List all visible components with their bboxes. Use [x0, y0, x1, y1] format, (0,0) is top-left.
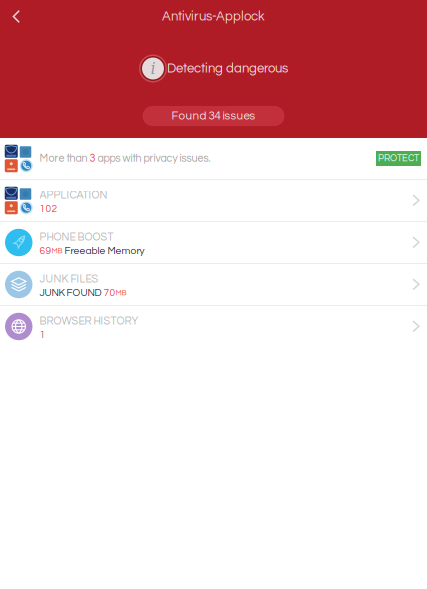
staticText: APPLICATION	[39, 190, 107, 201]
staticText: 3	[89, 153, 95, 164]
button[interactable]: More than	[0, 138, 427, 179]
button[interactable]: JUNK FILES	[0, 264, 427, 305]
staticText: PHONE BOOST	[39, 232, 113, 243]
staticText: PROTECT	[378, 154, 419, 163]
staticText: 1	[39, 330, 45, 340]
staticText: i	[150, 59, 155, 78]
staticText: JUNK FOUND	[39, 288, 103, 298]
staticText: 69	[39, 246, 51, 256]
staticText: More than	[39, 153, 89, 164]
staticText: apps with privacy issues.	[95, 153, 210, 164]
staticText: 70	[103, 288, 115, 298]
staticText: Freeable Memory	[62, 246, 144, 256]
button[interactable]: BROWSER HISTORY	[0, 306, 427, 347]
button[interactable]: APPLICATION	[0, 180, 427, 221]
staticText: Detecting dangerous	[167, 62, 288, 75]
staticText: Antivirus-Applock	[162, 10, 265, 23]
button[interactable]: Back	[0, 0, 33, 32]
staticText: MB	[51, 247, 62, 255]
staticText: BROWSER HISTORY	[39, 316, 138, 327]
staticText: JUNK FILES	[39, 274, 98, 285]
button[interactable]: PHONE BOOST	[0, 222, 427, 263]
staticText: Found 34 issues	[171, 110, 255, 122]
button[interactable]: Found 34 issues	[142, 106, 284, 126]
staticText: MB	[115, 289, 126, 297]
staticText: 102	[39, 204, 57, 214]
